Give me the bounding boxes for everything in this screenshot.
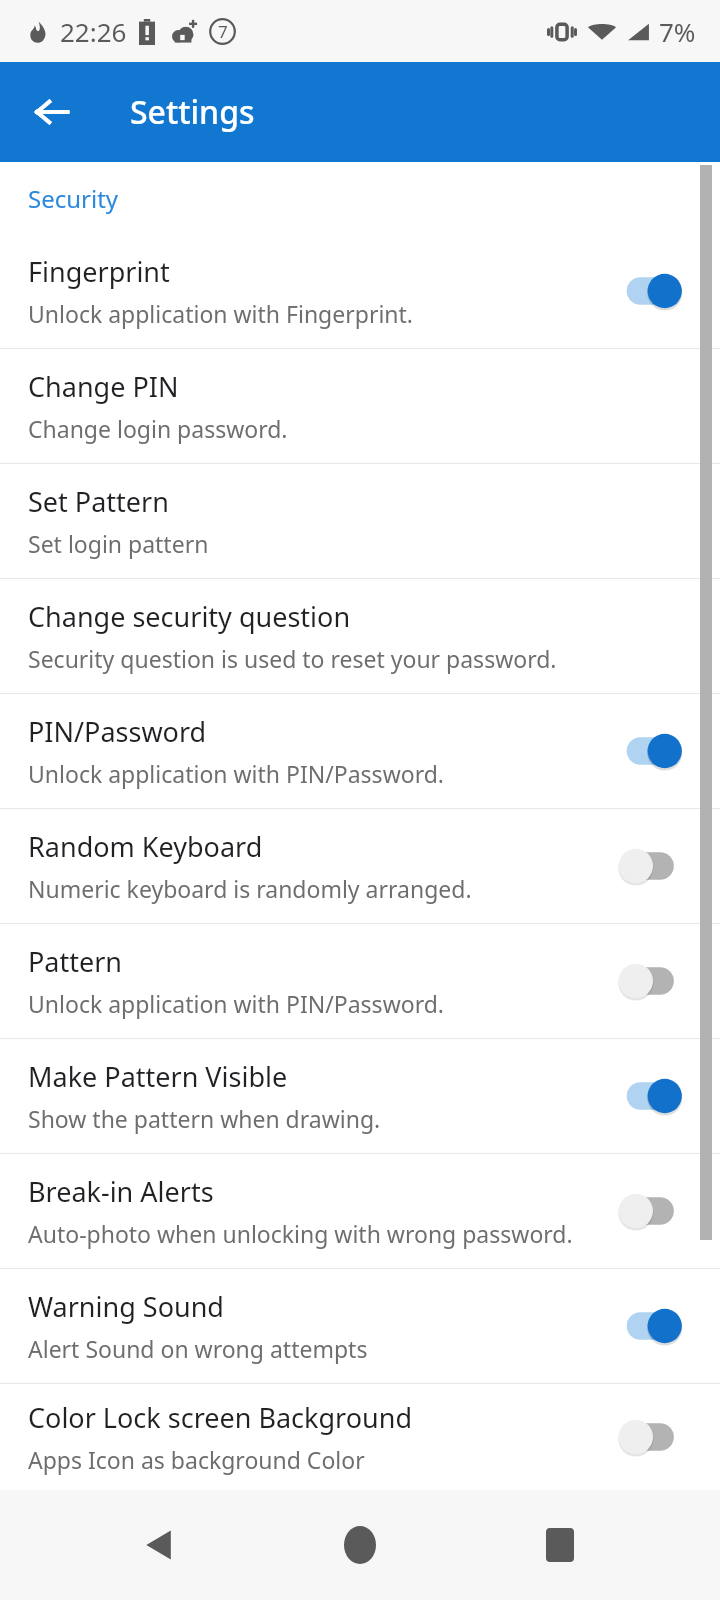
button[interactable]: Back	[120, 1505, 200, 1585]
staticText: Change security question	[28, 598, 351, 635]
staticText: Show the pattern when drawing.	[28, 1103, 381, 1134]
staticText: Apps Icon as background Color	[28, 1444, 365, 1475]
staticText: Change PIN	[28, 368, 179, 405]
button[interactable]: Change security question	[0, 579, 720, 693]
staticText: Fingerprint	[28, 253, 170, 290]
staticText: 7	[218, 20, 228, 43]
button[interactable]: Color Lock screen Background	[0, 1384, 720, 1490]
staticText: Change login password.	[28, 413, 288, 444]
staticText: Unlock application with PIN/Password.	[28, 758, 444, 789]
staticText: Break-in Alerts	[28, 1173, 214, 1210]
staticText: 22:26	[60, 14, 127, 49]
button[interactable]: Change PIN	[0, 349, 720, 463]
button[interactable]: Random Keyboard	[0, 809, 720, 923]
staticText: Security	[28, 182, 119, 215]
button[interactable]: Make Pattern Visible toggle	[600, 1064, 696, 1128]
button[interactable]: Random Keyboard toggle	[600, 834, 696, 898]
button[interactable]: Fingerprint toggle	[600, 259, 696, 323]
staticText: Color Lock screen Background	[28, 1399, 413, 1436]
staticText: PIN/Password	[28, 713, 207, 750]
staticText: Warning Sound	[28, 1288, 224, 1325]
staticText: Pattern	[28, 943, 123, 980]
button[interactable]: PIN/Password	[0, 694, 720, 808]
button[interactable]: Home	[320, 1505, 400, 1585]
staticText: Set Pattern	[28, 483, 169, 520]
button[interactable]: Pattern	[0, 924, 720, 1038]
staticText: Unlock application with Fingerprint.	[28, 298, 413, 329]
button[interactable]: Warning Sound toggle	[600, 1294, 696, 1358]
button[interactable]: Recents	[520, 1505, 600, 1585]
button[interactable]: Break-in Alerts toggle	[600, 1179, 696, 1243]
button[interactable]: Color Lock screen Background toggle	[600, 1405, 696, 1469]
staticText: Numeric keyboard is randomly arranged.	[28, 873, 472, 904]
button[interactable]: Make Pattern Visible	[0, 1039, 720, 1153]
staticText: Set login pattern	[28, 528, 209, 559]
button[interactable]: Back	[22, 82, 82, 142]
staticText: Random Keyboard	[28, 828, 263, 865]
staticText: Auto-photo when unlocking with wrong pas…	[28, 1218, 573, 1249]
staticText: Alert Sound on wrong attempts	[28, 1333, 368, 1364]
button[interactable]: Warning Sound	[0, 1269, 720, 1383]
staticText: Security question is used to reset your …	[28, 643, 557, 674]
staticText: Unlock application with PIN/Password.	[28, 988, 444, 1019]
button[interactable]: Break-in Alerts	[0, 1154, 720, 1268]
button[interactable]: PIN/Password toggle	[600, 719, 696, 783]
button[interactable]: Fingerprint	[0, 234, 720, 348]
button[interactable]: Set Pattern	[0, 464, 720, 578]
button[interactable]: Pattern toggle	[600, 949, 696, 1013]
staticText: Make Pattern Visible	[28, 1058, 288, 1095]
staticText: 7%	[659, 14, 696, 49]
staticText: Settings	[130, 90, 255, 134]
